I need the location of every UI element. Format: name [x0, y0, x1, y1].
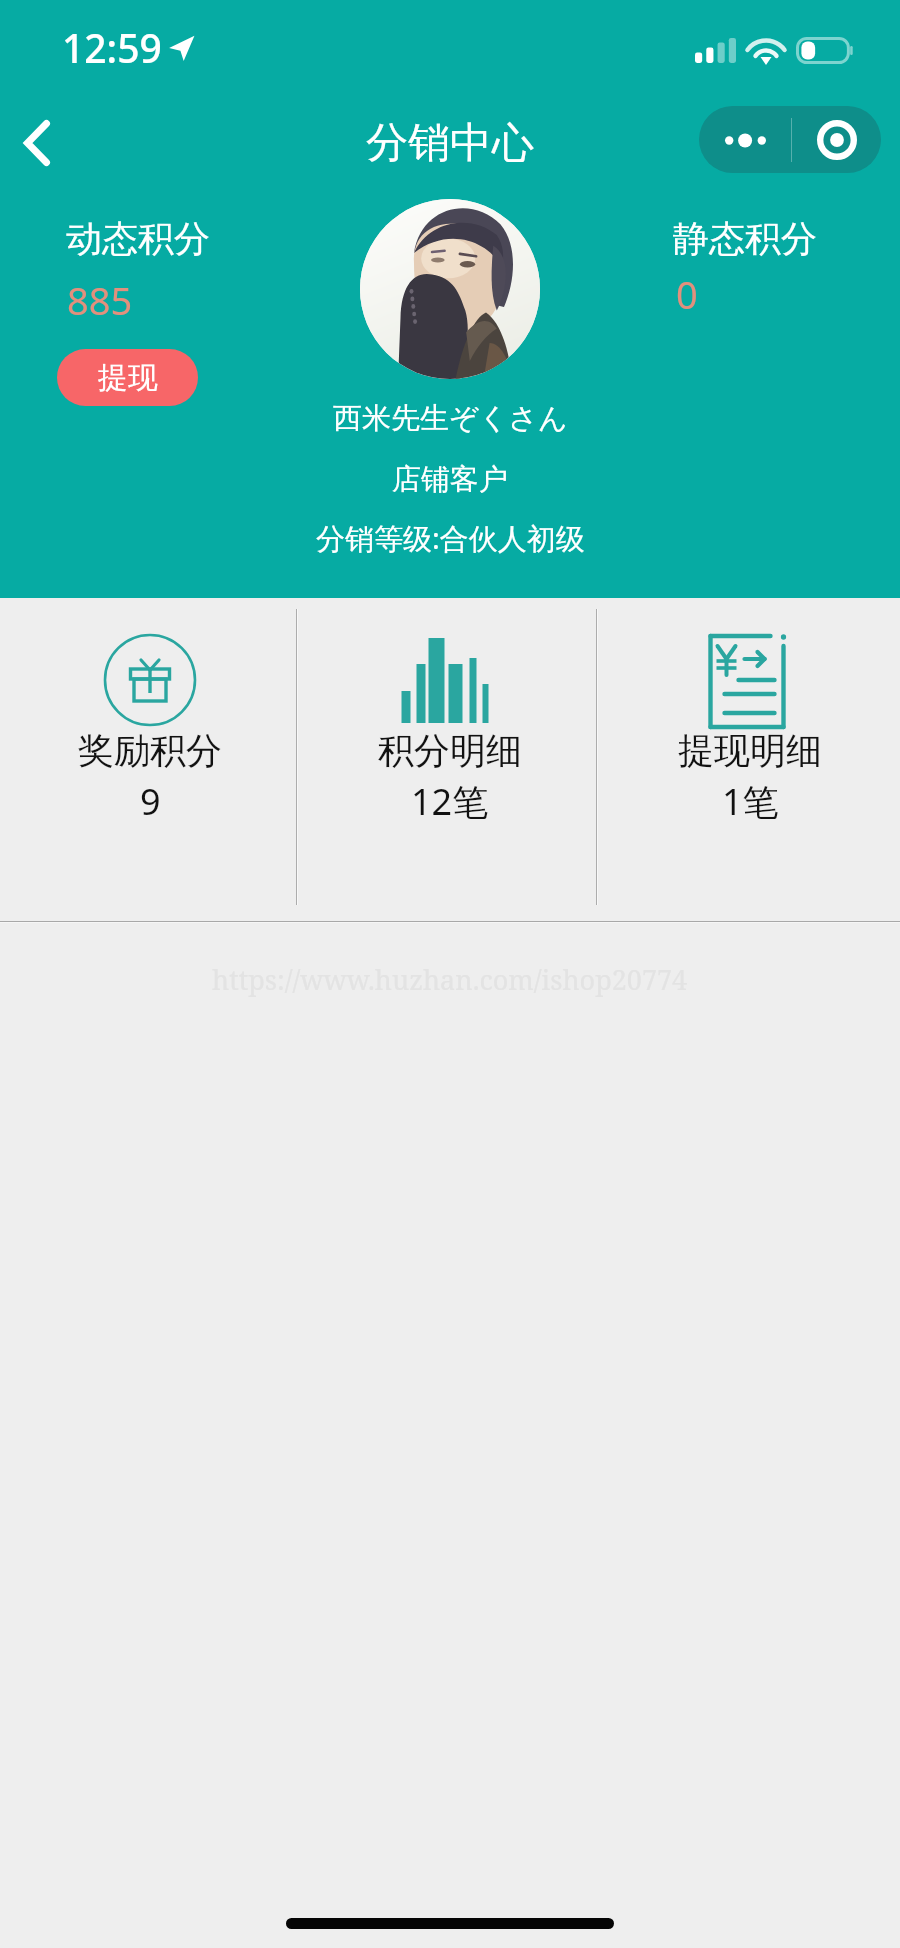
- staticText: 885: [67, 274, 133, 326]
- staticText: https://www.huzhan.com/ishop20774: [212, 961, 688, 998]
- staticText: 静态积分: [673, 216, 817, 261]
- button[interactable]: More options: [699, 106, 791, 173]
- button[interactable]: 积分明细: [300, 598, 600, 922]
- staticText: 提现明细: [678, 728, 822, 773]
- button[interactable]: 奖励积分: [0, 598, 300, 922]
- staticText: 分销中心: [366, 117, 534, 170]
- staticText: 西米先生ぞくさん: [333, 400, 568, 437]
- staticText: 分销等级:合伙人初级: [316, 518, 585, 558]
- staticText: 9: [140, 777, 161, 826]
- button[interactable]: Close mini program: [792, 106, 881, 173]
- button[interactable]: 提现: [57, 349, 198, 406]
- button[interactable]: 提现明细: [600, 598, 900, 922]
- staticText: 店铺客户: [392, 461, 508, 498]
- staticText: 提现: [98, 359, 158, 397]
- staticText: 0: [676, 268, 698, 320]
- staticText: 积分明细: [378, 728, 522, 773]
- staticText: 奖励积分: [78, 728, 222, 773]
- button[interactable]: Back: [0, 103, 72, 177]
- staticText: 12:59: [62, 21, 162, 74]
- button[interactable]: Profile photo: [360, 199, 540, 379]
- staticText: 动态积分: [66, 216, 210, 261]
- staticText: 1笔: [722, 777, 779, 826]
- staticText: 12笔: [411, 777, 489, 826]
